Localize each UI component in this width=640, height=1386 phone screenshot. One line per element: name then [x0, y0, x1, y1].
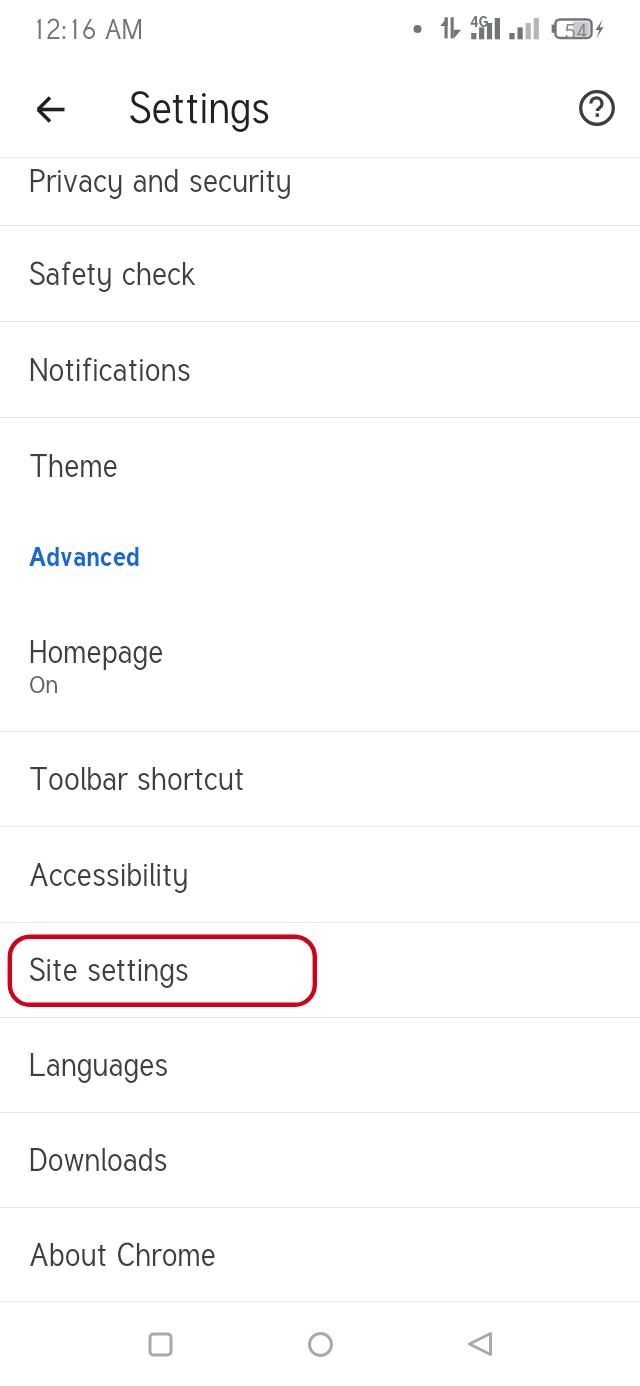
button[interactable]: Toolbar shortcut [0, 732, 640, 826]
button[interactable]: Navigate up [20, 79, 80, 139]
button[interactable]: Home [290, 1302, 350, 1386]
staticText: Toolbar shortcut [29, 755, 245, 801]
button[interactable]: Help and feedback [567, 78, 627, 138]
staticText: 4G [470, 10, 490, 32]
staticText: Settings [129, 75, 270, 137]
button[interactable]: Downloads [0, 1113, 640, 1207]
button[interactable]: Languages [0, 1018, 640, 1112]
button[interactable]: Advanced [0, 513, 640, 604]
button[interactable]: Notifications [0, 322, 640, 417]
button[interactable]: Accessibility [0, 827, 640, 922]
staticText: Languages [29, 1041, 169, 1087]
staticText: Privacy and security [29, 158, 292, 203]
staticText: Advanced [29, 537, 140, 574]
button[interactable]: About Chrome [0, 1208, 640, 1301]
button[interactable]: Back [450, 1302, 510, 1386]
staticText: Notifications [29, 346, 191, 392]
staticText: 54 [564, 15, 588, 46]
button[interactable]: Privacy and security [0, 158, 640, 225]
button[interactable]: Safety check [0, 226, 640, 321]
button[interactable]: Recent apps [130, 1302, 190, 1386]
staticText: Safety check [29, 250, 196, 296]
staticText: Downloads [29, 1136, 168, 1182]
staticText: On [29, 664, 59, 701]
staticText: Site settings [29, 946, 189, 992]
staticText: About Chrome [29, 1231, 216, 1277]
staticText: Homepage [29, 628, 164, 674]
button[interactable]: Site settings [0, 923, 640, 1017]
staticText: Theme [29, 442, 118, 488]
button[interactable]: Theme [0, 418, 640, 513]
staticText: 12:16 AM [31, 8, 143, 48]
staticText: Accessibility [29, 851, 189, 897]
button[interactable]: Homepage [0, 604, 640, 731]
